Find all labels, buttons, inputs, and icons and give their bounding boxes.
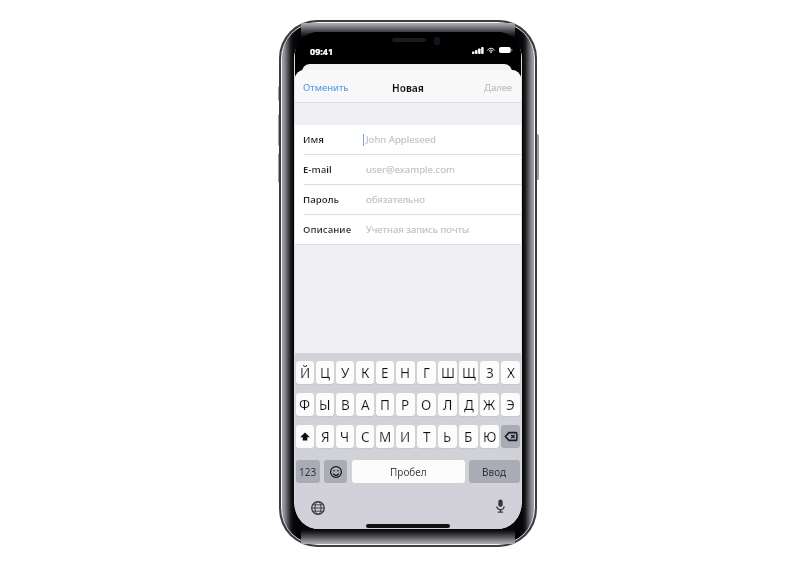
staticText: E-mail (303, 163, 332, 176)
staticText: Ч (340, 428, 350, 446)
button[interactable]: Ввод (469, 460, 520, 483)
staticText: Ш (441, 364, 455, 382)
staticText: С (361, 428, 370, 446)
button[interactable]: В (336, 393, 354, 416)
staticText: Д (464, 396, 474, 414)
staticText: З (486, 364, 494, 382)
button[interactable]: С (356, 425, 374, 448)
button[interactable]: Х (501, 361, 520, 384)
button[interactable]: З (480, 361, 499, 384)
button[interactable]: Г (417, 361, 436, 384)
button[interactable]: Ф (296, 393, 314, 416)
staticText: О (421, 396, 432, 414)
button[interactable]: К (356, 361, 374, 384)
staticText: Новая (392, 81, 424, 95)
button[interactable]: Ч (336, 425, 354, 448)
staticText: Ц (320, 364, 330, 382)
staticText: Далее (484, 81, 513, 94)
staticText: Р (401, 396, 410, 414)
button[interactable]: Т (417, 425, 436, 448)
button[interactable]: Я (316, 425, 334, 448)
button[interactable]: Ь (438, 425, 457, 448)
staticText: М (379, 428, 392, 446)
button[interactable]: Д (459, 393, 478, 416)
staticText: Пробел (390, 465, 427, 479)
staticText: Ф (299, 396, 311, 414)
button[interactable]: Имя (295, 125, 521, 154)
button[interactable]: Отменить (295, 77, 355, 98)
staticText: А (361, 396, 370, 414)
staticText: John Appleseed (366, 133, 436, 146)
staticText: user@example.com (366, 163, 455, 176)
staticText: Пароль (303, 193, 339, 206)
button[interactable]: Е (376, 361, 394, 384)
staticText: Учетная запись почты (366, 223, 470, 236)
staticText: И (400, 428, 411, 446)
button[interactable]: Далее (478, 77, 521, 98)
staticText: Отменить (303, 81, 349, 94)
button[interactable]: П (376, 393, 394, 416)
button[interactable]: Й (296, 361, 314, 384)
staticText: Н (400, 364, 411, 382)
button[interactable]: 123 (296, 460, 320, 483)
button[interactable]: Э (501, 393, 520, 416)
button[interactable]: Ю (480, 425, 499, 448)
button[interactable]: Ж (480, 393, 499, 416)
button[interactable]: Ц (316, 361, 334, 384)
button[interactable]: Описание (295, 215, 521, 244)
button[interactable]: О (417, 393, 436, 416)
staticText: Л (443, 396, 453, 414)
staticText: Г (423, 364, 430, 382)
staticText: Т (423, 428, 431, 446)
button[interactable]: Ш (438, 361, 457, 384)
staticText: П (380, 396, 390, 414)
staticText: Щ (462, 364, 476, 382)
button[interactable]: Н (396, 361, 415, 384)
staticText: Я (321, 428, 330, 446)
button[interactable]: И (396, 425, 415, 448)
button[interactable]: Р (396, 393, 415, 416)
staticText: У (341, 364, 350, 382)
button[interactable]: Л (438, 393, 457, 416)
staticText: Й (300, 364, 311, 382)
staticText: Е (381, 364, 389, 382)
button[interactable]: Dictation (494, 497, 506, 514)
staticText: Э (506, 396, 515, 414)
button[interactable]: E-mail (295, 155, 521, 184)
staticText: Ь (443, 428, 452, 446)
staticText: В (341, 396, 350, 414)
button[interactable]: Change keyboard (310, 500, 325, 515)
staticText: обязательно (366, 193, 425, 206)
button[interactable]: У (336, 361, 354, 384)
staticText: Ввод (482, 465, 507, 479)
button[interactable]: Shift (296, 425, 314, 448)
staticText: Б (464, 428, 473, 446)
staticText: К (361, 364, 370, 382)
button[interactable]: Пароль (295, 185, 521, 214)
button[interactable]: Пробел (352, 460, 465, 483)
button[interactable]: Backspace (501, 425, 520, 448)
staticText: Описание (303, 223, 352, 236)
staticText: Имя (303, 133, 324, 146)
staticText: 09:41 (310, 45, 334, 57)
button[interactable]: А (356, 393, 374, 416)
staticText: Ы (319, 396, 331, 414)
staticText: Ю (483, 428, 497, 446)
staticText: Ж (483, 396, 496, 414)
button[interactable]: Щ (459, 361, 478, 384)
button[interactable]: Emoji (324, 460, 347, 483)
button[interactable]: М (376, 425, 394, 448)
button[interactable]: Ы (316, 393, 334, 416)
button[interactable]: Б (459, 425, 478, 448)
staticText: 123 (299, 465, 317, 479)
staticText: Х (507, 364, 515, 382)
